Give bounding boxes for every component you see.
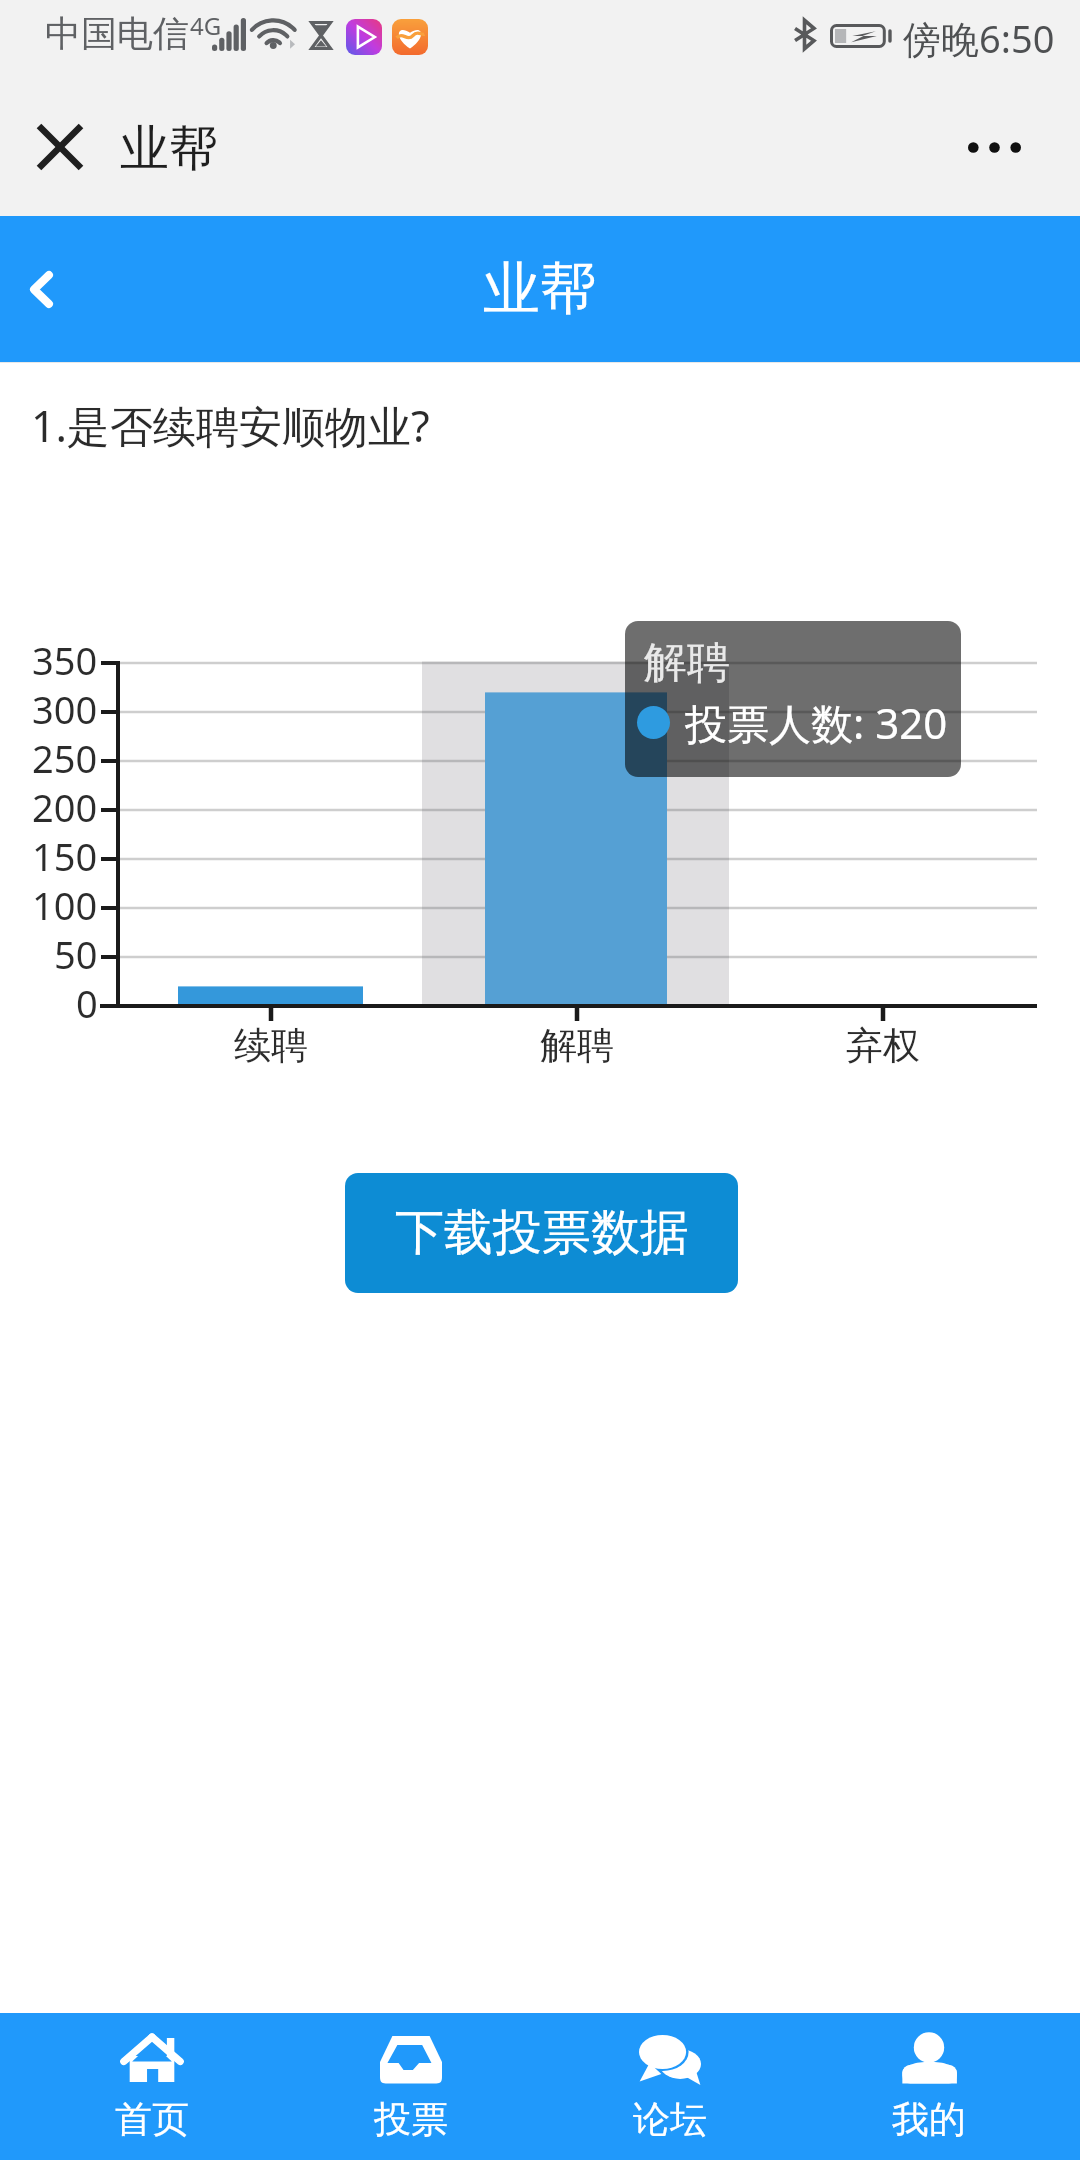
staticText: 中国电信 [45,11,189,56]
staticText: 业帮 [120,118,218,180]
staticText: 300 [32,683,98,735]
staticText: 4G [190,9,222,42]
button[interactable]: 下载投票数据 [345,1173,738,1293]
staticText: 350 [32,634,98,686]
button[interactable]: More options [942,101,1046,193]
staticText: 投票人数: 320 [685,694,948,751]
button[interactable]: 首页 [22,2013,281,2160]
staticText: 0 [76,977,98,1029]
staticText: 250 [32,732,98,784]
staticText: 投票 [374,2096,448,2143]
button[interactable]: Close [14,105,106,197]
staticText: 弃权 [846,1022,920,1069]
button[interactable]: Back [0,216,110,362]
staticText: 1.是否续聘安顺物业? [31,396,430,455]
button[interactable]: 投票 [281,2013,540,2160]
button[interactable]: 我的 [799,2013,1058,2160]
staticText: 200 [32,781,98,833]
staticText: 傍晚6:50 [903,12,1055,64]
staticText: 50 [54,928,98,980]
button[interactable]: 论坛 [540,2013,799,2160]
staticText: 业帮 [483,253,597,325]
staticText: 解聘 [540,1022,614,1069]
staticText: 首页 [115,2096,189,2143]
staticText: 150 [32,830,98,882]
staticText: 下载投票数据 [395,1202,689,1264]
staticText: 100 [32,879,98,931]
staticText: 我的 [892,2096,966,2143]
staticText: 续聘 [234,1022,308,1069]
staticText: 解聘 [644,636,730,690]
staticText: 论坛 [633,2096,707,2143]
